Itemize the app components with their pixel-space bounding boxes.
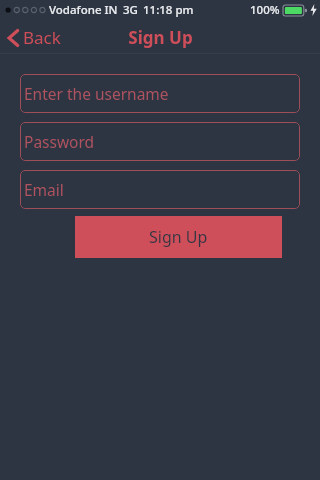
- staticText: Enter the username: [24, 83, 169, 104]
- staticText: Password: [24, 131, 95, 152]
- staticText: Sign Up: [128, 26, 193, 49]
- staticText: 11:18 pm: [143, 2, 194, 18]
- staticText: Email: [24, 179, 64, 200]
- button[interactable]: Password: [20, 122, 300, 161]
- staticText: Vodafone IN: [49, 2, 118, 18]
- button[interactable]: Back: [0, 22, 71, 53]
- staticText: 3G: [123, 2, 138, 18]
- staticText: Sign Up: [149, 226, 208, 248]
- staticText: Back: [23, 26, 61, 49]
- staticText: 100%: [250, 2, 280, 18]
- button[interactable]: Enter the username: [20, 74, 300, 113]
- button[interactable]: Email: [20, 170, 300, 209]
- button[interactable]: Sign Up: [75, 216, 282, 258]
